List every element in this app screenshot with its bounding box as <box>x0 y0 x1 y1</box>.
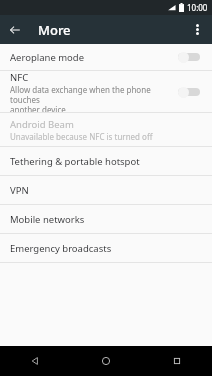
button[interactable]: NFC <box>0 71 212 112</box>
button[interactable]: Toggle NFC <box>174 81 204 103</box>
staticText: Unavailable because NFC is turned off <box>10 131 153 142</box>
staticText: More <box>38 21 71 39</box>
button[interactable]: Aeroplane mode <box>0 44 212 70</box>
button[interactable]: Tethering & portable hotspot <box>0 147 212 175</box>
button[interactable]: VPN <box>0 176 212 204</box>
button[interactable]: Emergency broadcasts <box>0 234 212 262</box>
button[interactable]: Mobile networks <box>0 205 212 233</box>
button[interactable]: Back <box>0 346 70 376</box>
staticText: VPN <box>10 184 29 197</box>
staticText: Allow data exchange when the phone touch… <box>10 84 174 112</box>
staticText: Aeroplane mode <box>10 51 85 64</box>
staticText: Mobile networks <box>10 213 85 226</box>
button[interactable]: Back <box>0 15 29 44</box>
button[interactable]: Recent apps <box>141 346 212 376</box>
button[interactable]: More options <box>183 15 212 44</box>
button[interactable]: Android Beam <box>0 113 212 146</box>
staticText: Emergency broadcasts <box>10 242 112 255</box>
button[interactable]: Toggle Aeroplane mode <box>174 46 204 68</box>
button[interactable]: Home <box>70 346 141 376</box>
staticText: Tethering & portable hotspot <box>10 155 140 168</box>
staticText: NFC <box>10 71 29 84</box>
staticText: Android Beam <box>10 118 74 131</box>
staticText: 10:00 <box>187 2 208 13</box>
